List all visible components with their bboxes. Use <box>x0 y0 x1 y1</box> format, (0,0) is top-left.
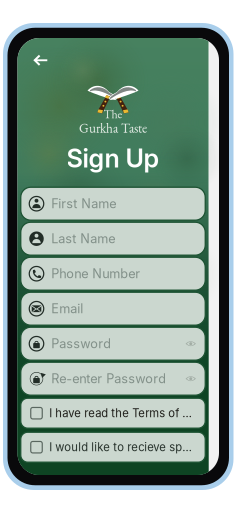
button[interactable]: I would like to recieve special of... <box>21 432 205 462</box>
staticText: Sign Up <box>66 143 159 174</box>
button[interactable]: Phone Number <box>21 257 205 290</box>
button[interactable]: Re-enter Password <box>21 362 205 395</box>
staticText: I have read the Terms of Use & ... <box>49 406 197 420</box>
staticText: Re-enter Password <box>51 371 166 386</box>
staticText: I would like to recieve special of... <box>49 440 197 454</box>
staticText: The <box>103 106 122 122</box>
staticText: Email <box>51 301 83 316</box>
staticText: Phone Number <box>51 266 140 281</box>
button[interactable]: Last Name <box>21 222 205 255</box>
button[interactable]: Email <box>21 292 205 325</box>
staticText: First Name <box>51 196 116 211</box>
button[interactable]: I have read the Terms of Use & ... <box>21 398 205 428</box>
staticText: Last Name <box>51 231 115 246</box>
staticText: Gurkha Taste <box>79 119 147 137</box>
staticText: Password <box>51 336 111 351</box>
button[interactable]: Back <box>17 48 48 72</box>
button[interactable]: First Name <box>21 187 205 220</box>
button[interactable]: Password <box>21 327 205 360</box>
